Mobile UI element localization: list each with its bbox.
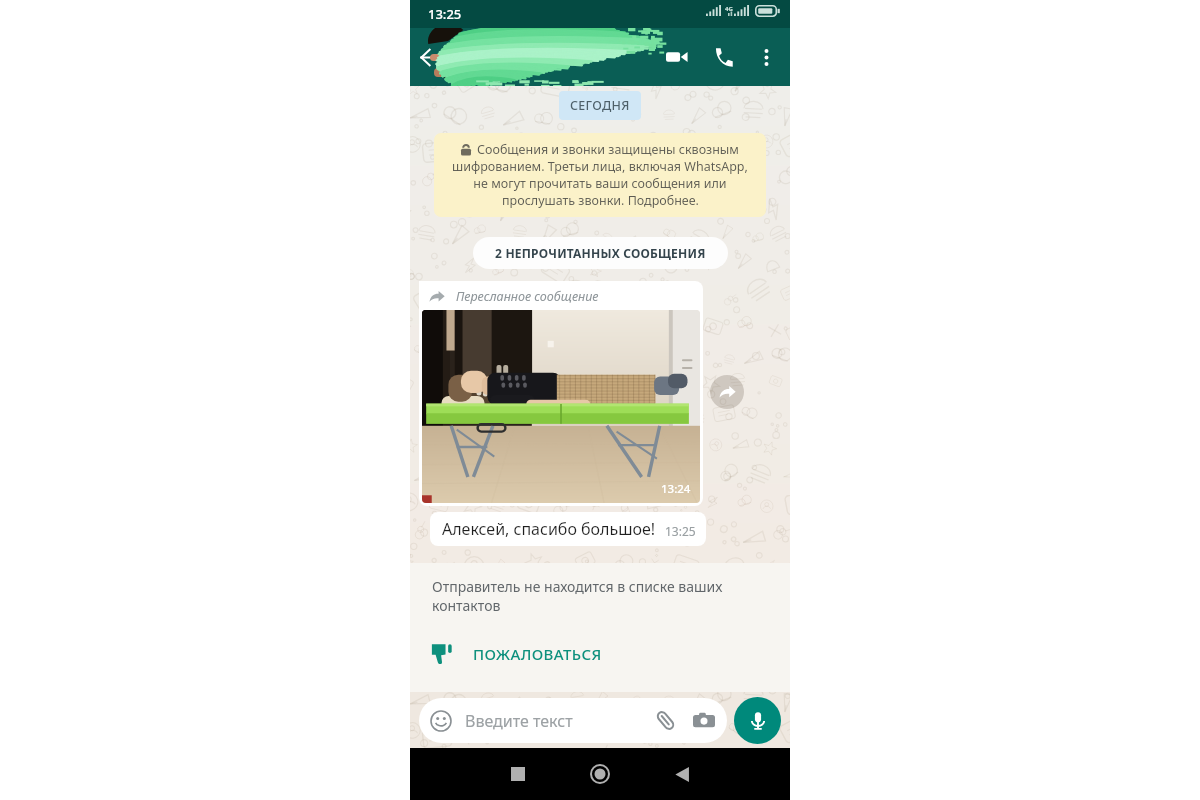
button[interactable]: СЕГОДНЯ [559,91,641,120]
staticText: 13:25 [665,523,696,539]
button[interactable]: Алексей, спасибо большое! [430,512,706,546]
button[interactable]: Forward [710,375,744,409]
button[interactable]: Emoji [419,698,727,743]
other: Emoji [430,710,452,732]
staticText: не могут прочитать ваши сообщения или [473,175,727,192]
button[interactable]: Record voice message [734,697,781,744]
button[interactable]: Recent apps [495,751,541,797]
staticText: СЕГОДНЯ [570,97,630,114]
button[interactable]: Home [577,751,623,797]
staticText: прослушать звонки. Подробнее. [502,192,699,209]
staticText: Алексей, спасибо большое! [442,518,656,540]
button[interactable]: 2 НЕПРОЧИТАННЫХ СООБЩЕНИЯ [473,237,728,269]
staticText: 4G [725,5,733,13]
staticText: Пересланное сообщение [456,288,599,305]
staticText: Отправитель не находится в списке ваших … [432,577,738,615]
staticText: Введите текст [465,710,573,732]
button[interactable]: Call [700,28,746,86]
button[interactable]: Back [410,28,452,86]
staticText: ПОЖАЛОВАТЬСЯ [473,644,602,664]
staticText: 13:24 [661,481,691,497]
button[interactable]: Video call [654,28,700,86]
staticText: 2 НЕПРОЧИТАННЫХ СООБЩЕНИЯ [495,245,706,261]
other: Camera [693,710,715,732]
button[interactable]: Back [659,751,705,797]
button[interactable]: More options [746,28,786,86]
staticText: Сообщения и звонки защищены сквозным [477,141,739,158]
staticText: шифрованием. Третьи лица, включая WhatsA… [452,158,748,175]
staticText: 13:25 [428,5,462,23]
button[interactable]: ПОЖАЛОВАТЬСЯ [431,639,602,669]
button[interactable]: Сообщения и звонки защищены сквозным [434,133,766,217]
other: Attach file [655,710,676,731]
